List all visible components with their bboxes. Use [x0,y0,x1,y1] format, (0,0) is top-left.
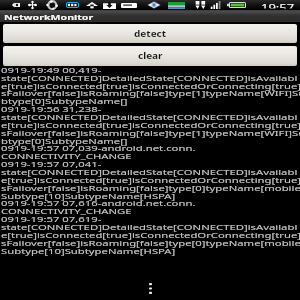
staticText: clear [138,50,163,62]
button[interactable]: clear [3,46,297,66]
staticText: NetworkMonitor [4,12,94,20]
staticText: 19:57 [261,1,295,9]
staticText: 0919-19:49 00,419- state[CONNECTED]Detai… [1,65,300,256]
staticText: detect [134,28,167,40]
button[interactable]: More options [141,278,159,298]
button[interactable]: detect [3,24,297,43]
